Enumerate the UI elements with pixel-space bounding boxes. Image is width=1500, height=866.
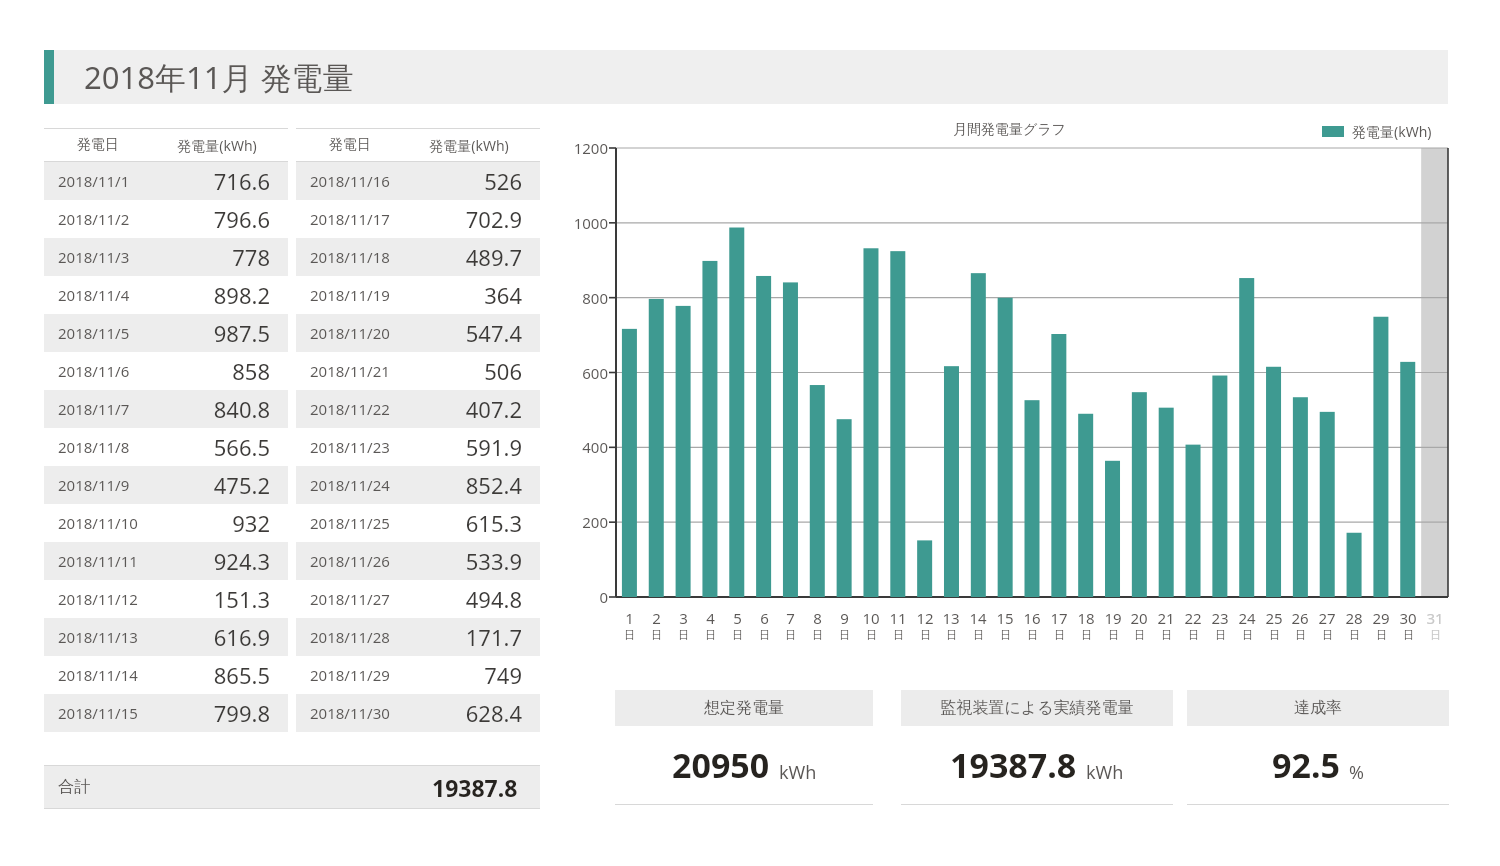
button[interactable]: 2018/11/3 xyxy=(44,238,288,276)
button[interactable]: 監視装置による実績発電量 xyxy=(901,690,1173,805)
staticText: 日 xyxy=(1269,628,1280,642)
staticText: 616.9 xyxy=(160,622,270,652)
button[interactable]: 想定発電量 xyxy=(615,690,873,805)
button[interactable]: 2018/11/29 xyxy=(296,656,540,694)
staticText: 19387.8 xyxy=(432,772,518,803)
staticText: 月間発電量グラフ xyxy=(953,121,1066,139)
button[interactable]: 2018/11/14 xyxy=(44,656,288,694)
staticText: 2 xyxy=(652,608,661,628)
button[interactable]: 2018/11/13 xyxy=(44,618,288,656)
staticText: 2018/11/8 xyxy=(58,437,160,457)
staticText: 日 xyxy=(732,628,743,642)
staticText: 日 xyxy=(839,628,850,642)
staticText: 799.8 xyxy=(160,698,270,728)
staticText: 3 xyxy=(679,608,688,628)
button[interactable]: 2018/11/12 xyxy=(44,580,288,618)
staticText: 494.8 xyxy=(412,584,522,614)
staticText: 22 xyxy=(1184,608,1202,628)
staticText: 14 xyxy=(969,608,987,628)
button[interactable]: 2018/11/26 xyxy=(296,542,540,580)
staticText: 日 xyxy=(759,628,770,642)
staticText: 2018/11/17 xyxy=(310,209,412,229)
button[interactable]: 2018年11月 発電量 xyxy=(44,50,1448,104)
staticText: 30 xyxy=(1399,608,1417,628)
staticText: 566.5 xyxy=(160,432,270,462)
button[interactable]: 2018/11/9 xyxy=(44,466,288,504)
button[interactable]: 2018/11/7 xyxy=(44,390,288,428)
staticText: 発電量(kWh) xyxy=(404,136,534,155)
staticText: 日 xyxy=(1188,628,1199,642)
button[interactable]: 2018/11/21 xyxy=(296,352,540,390)
staticText: 日 xyxy=(1295,628,1306,642)
button[interactable]: 2018/11/5 xyxy=(44,314,288,352)
staticText: 達成率 xyxy=(1294,698,1342,718)
staticText: 2018/11/3 xyxy=(58,247,160,267)
staticText: 26 xyxy=(1291,608,1309,628)
button[interactable]: 2018/11/16 xyxy=(296,162,540,200)
staticText: 28 xyxy=(1345,608,1363,628)
staticText: 9 xyxy=(840,608,849,628)
button[interactable]: 2018/11/11 xyxy=(44,542,288,580)
button[interactable]: 2018/11/8 xyxy=(44,428,288,466)
button[interactable]: 2018/11/4 xyxy=(44,276,288,314)
staticText: 19387.8 xyxy=(950,742,1077,788)
staticText: 2018/11/14 xyxy=(58,665,160,685)
button[interactable]: 2018/11/17 xyxy=(296,200,540,238)
staticText: 1000 xyxy=(560,213,608,233)
staticText: 24 xyxy=(1238,608,1256,628)
staticText: 16 xyxy=(1023,608,1041,628)
staticText: 2018/11/30 xyxy=(310,703,412,723)
button[interactable]: 2018/11/6 xyxy=(44,352,288,390)
staticText: 407.2 xyxy=(412,394,522,424)
staticText: 23 xyxy=(1211,608,1229,628)
staticText: 547.4 xyxy=(412,318,522,348)
staticText: 800 xyxy=(560,288,608,308)
staticText: 526 xyxy=(412,166,522,196)
button[interactable]: 2018/11/25 xyxy=(296,504,540,542)
staticText: 932 xyxy=(160,508,270,538)
staticText: 2018/11/25 xyxy=(310,513,412,533)
staticText: 400 xyxy=(560,437,608,457)
button[interactable]: 2018/11/2 xyxy=(44,200,288,238)
staticText: 778 xyxy=(160,242,270,272)
button[interactable]: 発電量(kWh) xyxy=(1322,122,1432,141)
staticText: 日 xyxy=(678,628,689,642)
staticText: 716.6 xyxy=(160,166,270,196)
staticText: 日 xyxy=(1054,628,1065,642)
button[interactable]: 2018/11/20 xyxy=(296,314,540,352)
staticText: 2018/11/27 xyxy=(310,589,412,609)
staticText: 日 xyxy=(1161,628,1172,642)
staticText: 日 xyxy=(812,628,823,642)
staticText: 日 xyxy=(1081,628,1092,642)
staticText: 日 xyxy=(651,628,662,642)
staticText: 日 xyxy=(893,628,904,642)
button[interactable]: 2018/11/18 xyxy=(296,238,540,276)
button[interactable]: 2018/11/23 xyxy=(296,428,540,466)
staticText: 31 xyxy=(1426,608,1444,628)
staticText: 日 xyxy=(946,628,957,642)
button[interactable]: 2018/11/10 xyxy=(44,504,288,542)
button[interactable]: 2018/11/22 xyxy=(296,390,540,428)
staticText: 852.4 xyxy=(412,470,522,500)
staticText: 日 xyxy=(1027,628,1038,642)
staticText: 想定発電量 xyxy=(704,698,784,718)
staticText: 発電量(kWh) xyxy=(152,136,282,155)
button[interactable]: 達成率 xyxy=(1187,690,1449,805)
staticText: 2018/11/24 xyxy=(310,475,412,495)
staticText: % xyxy=(1349,760,1364,785)
button[interactable]: 2018/11/1 xyxy=(44,162,288,200)
button[interactable]: 2018/11/28 xyxy=(296,618,540,656)
staticText: 2018/11/4 xyxy=(58,285,160,305)
staticText: 2018/11/15 xyxy=(58,703,160,723)
button[interactable]: 2018/11/27 xyxy=(296,580,540,618)
button[interactable]: 2018/11/24 xyxy=(296,466,540,504)
staticText: 200 xyxy=(560,512,608,532)
button[interactable]: 合計 xyxy=(44,766,540,808)
button[interactable]: 2018/11/15 xyxy=(44,694,288,732)
staticText: 151.3 xyxy=(160,584,270,614)
staticText: 日 xyxy=(705,628,716,642)
button[interactable]: 2018/11/19 xyxy=(296,276,540,314)
staticText: 2018年11月 発電量 xyxy=(84,56,354,98)
staticText: 11 xyxy=(889,608,907,628)
button[interactable]: 2018/11/30 xyxy=(296,694,540,732)
